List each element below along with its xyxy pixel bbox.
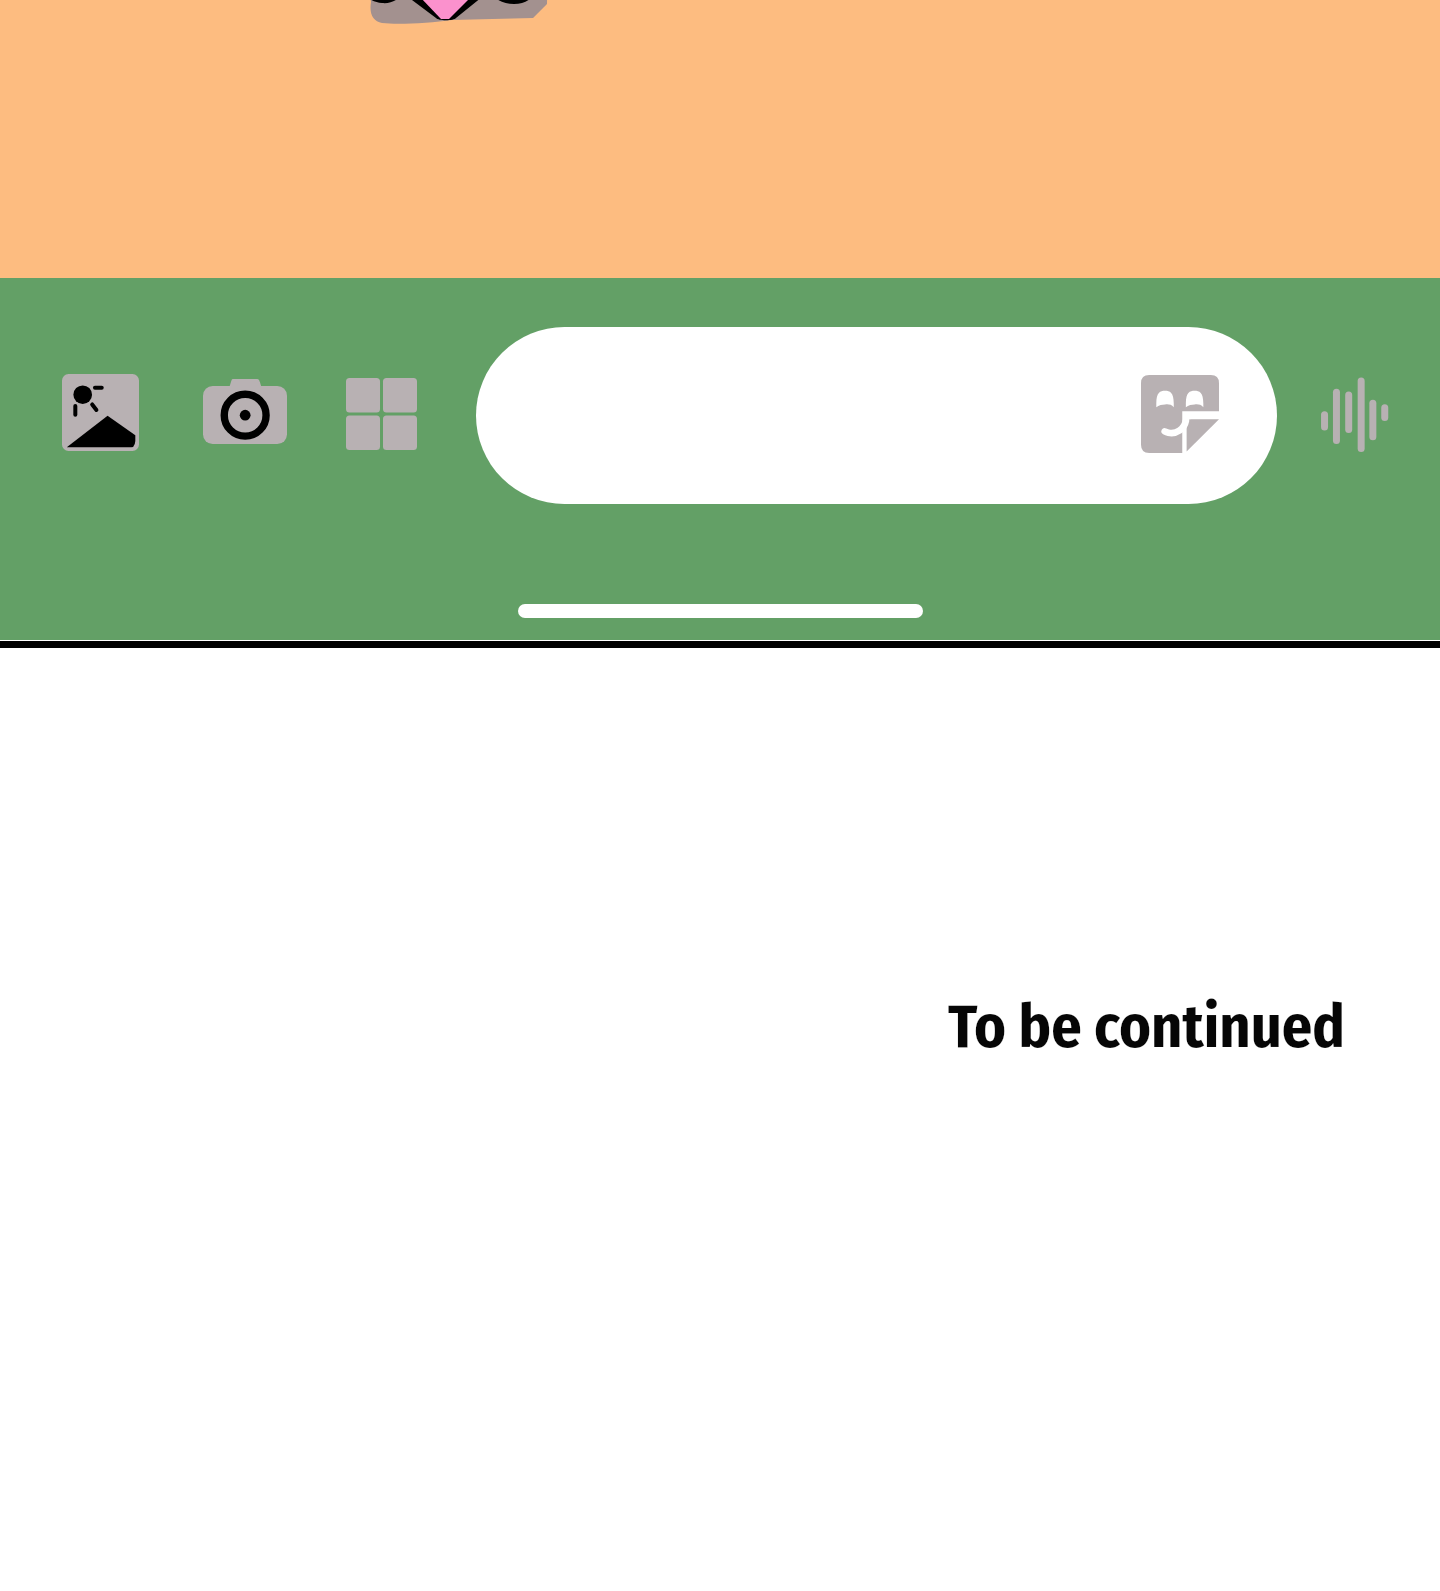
button[interactable]: Voice message bbox=[1320, 377, 1390, 452]
staticText: To be continued bbox=[948, 991, 1345, 1063]
button[interactable]: Camera bbox=[203, 379, 287, 444]
button[interactable]: Stickers bbox=[1141, 375, 1219, 453]
button[interactable]: Gallery bbox=[62, 374, 139, 451]
button[interactable]: Apps bbox=[346, 378, 417, 450]
button[interactable]: Home bbox=[518, 604, 923, 618]
button[interactable]: Stickers bbox=[476, 327, 1277, 504]
